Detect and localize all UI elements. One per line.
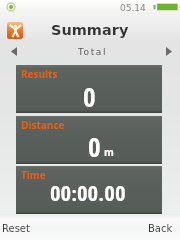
button[interactable]: Sports Tracker [7, 22, 23, 39]
staticText: Summary [51, 22, 129, 39]
staticText: Back [148, 223, 173, 235]
staticText: 0 [83, 84, 96, 113]
button[interactable]: Next [163, 45, 175, 57]
staticText: Total [78, 47, 108, 57]
button[interactable]: Distance [16, 116, 162, 164]
staticText: 00:00.00 [50, 182, 126, 207]
button[interactable]: Time [16, 166, 162, 214]
button[interactable]: Reset [0, 219, 42, 239]
button[interactable]: Previous [8, 45, 20, 57]
staticText: 05.14 [120, 3, 146, 13]
staticText: Reset [2, 223, 30, 235]
button[interactable]: Results [16, 65, 162, 113]
staticText: Distance [21, 118, 65, 132]
staticText: Results [21, 67, 58, 81]
staticText: 0 [88, 134, 101, 163]
staticText: Time [21, 168, 46, 182]
staticText: m [104, 145, 114, 159]
button[interactable]: Back [136, 219, 180, 239]
